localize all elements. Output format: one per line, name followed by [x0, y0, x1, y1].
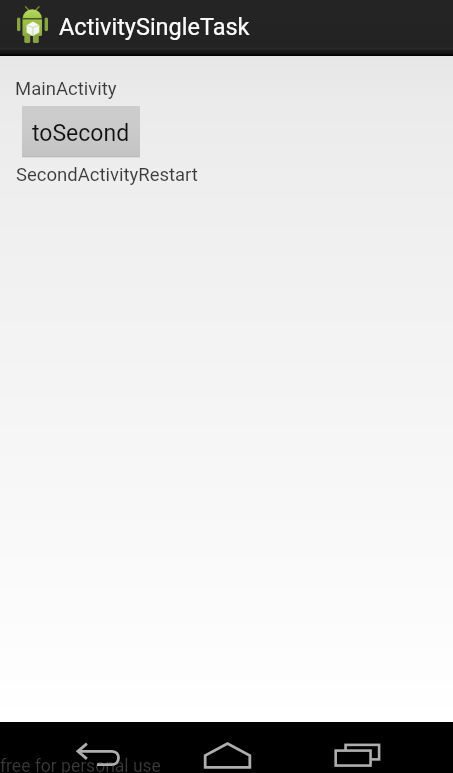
button[interactable]: Home: [204, 743, 251, 768]
button[interactable]: toSecond: [22, 106, 140, 158]
staticText: MainActivity: [15, 78, 117, 100]
staticText: SecondActivityRestart: [16, 164, 198, 186]
staticText: toSecond: [32, 120, 130, 147]
staticText: free for personal use: [0, 756, 161, 773]
button[interactable]: ActivitySingleTask: [0, 0, 258, 55]
staticText: ActivitySingleTask: [59, 13, 250, 41]
button[interactable]: Back: [77, 742, 121, 766]
button[interactable]: Recent apps: [335, 744, 380, 766]
